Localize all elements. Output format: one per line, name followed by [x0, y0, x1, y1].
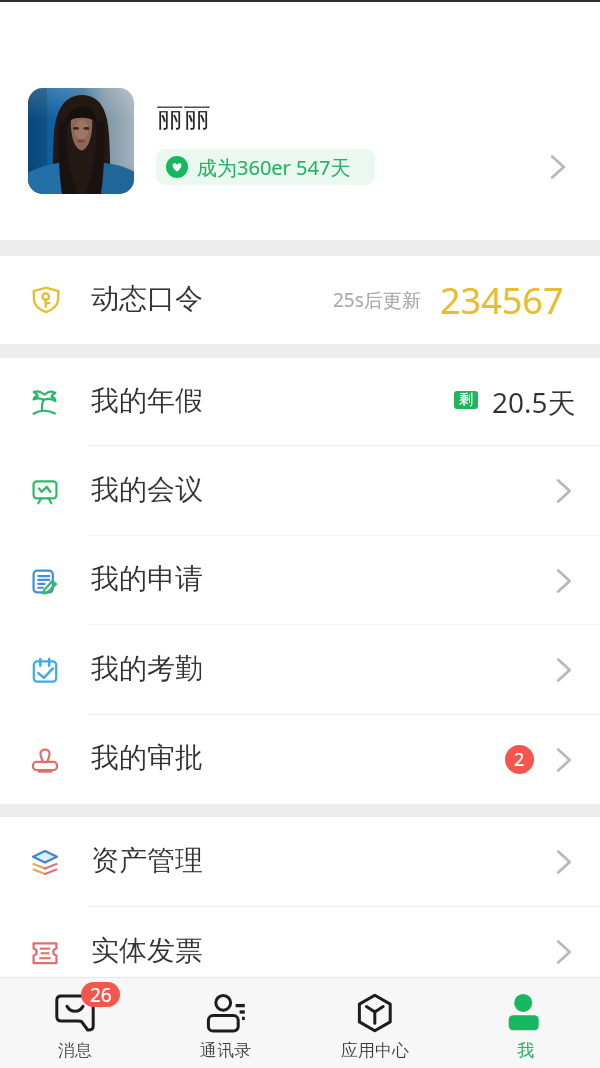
other: 个人资料	[542, 152, 572, 182]
staticText: 我的会议	[91, 472, 203, 507]
staticText: 20.5天	[492, 383, 576, 421]
button[interactable]: 动态口令	[0, 256, 600, 344]
button[interactable]: 我的审批	[0, 715, 600, 804]
staticText: 我的审批	[91, 740, 203, 775]
button[interactable]: 应用中心	[300, 978, 450, 1068]
staticText: 25s后更新	[333, 287, 421, 313]
staticText: 我	[517, 1040, 534, 1061]
staticText: 2	[514, 747, 525, 772]
button[interactable]: 资产管理	[0, 817, 600, 907]
button[interactable]: 我的申请	[0, 536, 600, 625]
staticText: 丽丽	[157, 101, 211, 135]
staticText: 234567	[440, 276, 564, 325]
button[interactable]: 我的会议	[0, 446, 600, 536]
button[interactable]: 我的考勤	[0, 625, 600, 715]
staticText: 剩	[459, 391, 473, 409]
button[interactable]: 我	[450, 978, 600, 1068]
button[interactable]: 实体发票	[0, 907, 600, 997]
staticText: 消息	[58, 1040, 92, 1061]
other: 通讯录	[205, 993, 245, 1033]
other: 消息	[55, 993, 95, 1033]
other: 应用中心	[355, 993, 395, 1033]
staticText: 我的考勤	[91, 651, 203, 686]
staticText: 我的申请	[91, 561, 203, 596]
staticText: 实体发票	[91, 933, 203, 968]
other: 我	[505, 993, 545, 1033]
button[interactable]: 丽丽	[0, 2, 600, 240]
staticText: 26	[90, 982, 112, 1007]
staticText: 动态口令	[91, 281, 203, 316]
button[interactable]: 通讯录	[150, 978, 300, 1068]
staticText: 应用中心	[341, 1040, 409, 1061]
staticText: 资产管理	[91, 843, 203, 878]
button[interactable]: 我的年假	[0, 358, 600, 446]
staticText: 成为360er 547天	[197, 154, 351, 181]
staticText: 我的年假	[91, 383, 203, 418]
button[interactable]: 消息	[0, 978, 150, 1068]
staticText: 通讯录	[200, 1040, 251, 1061]
